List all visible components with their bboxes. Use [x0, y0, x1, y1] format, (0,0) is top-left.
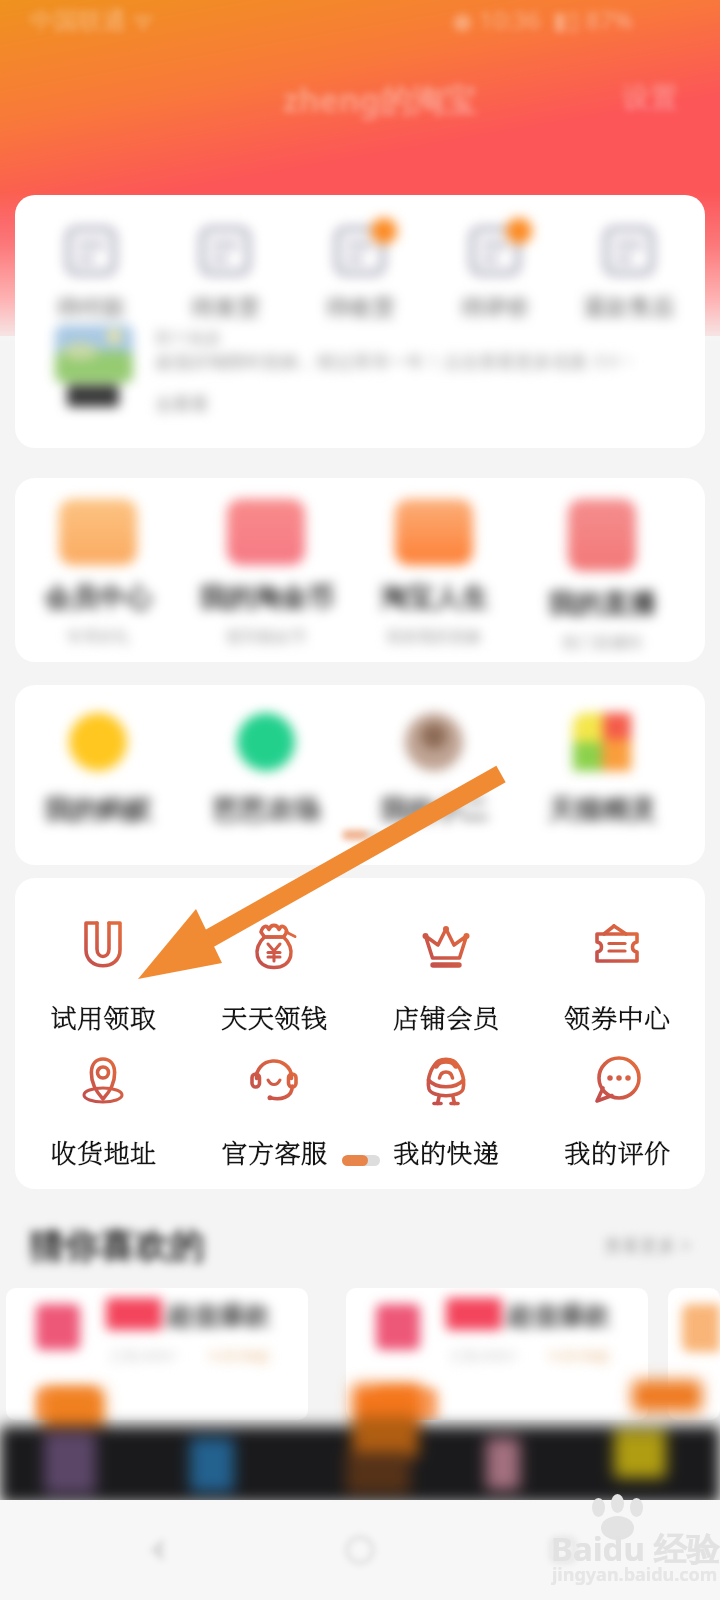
staticText: 专享好礼 — [66, 627, 130, 647]
staticText: 芭芭农场 — [212, 793, 320, 827]
button[interactable]: 待发货 — [166, 195, 284, 319]
button[interactable]: 淘宝人生 — [359, 499, 509, 647]
button[interactable]: 待收货 — [301, 195, 419, 319]
button[interactable]: 待付款 — [32, 195, 150, 319]
button[interactable]: 我的小二 — [359, 713, 509, 827]
staticText: ◉ 10:36 ▮▯ 87% — [452, 3, 634, 36]
staticText: 我的小二 — [380, 793, 488, 827]
button[interactable]: Recents — [517, 1504, 609, 1596]
staticText: 待评价 — [461, 293, 530, 319]
staticText: 我的淘金币 — [199, 581, 334, 615]
staticText: 官方客服 — [221, 1133, 328, 1170]
staticText: 我的直播 — [548, 587, 656, 621]
staticText: 查看更多 > — [604, 1233, 691, 1258]
staticText: 热门直播间 — [562, 633, 642, 653]
staticText: 会员中心 — [44, 581, 152, 615]
staticText: 双11热卖 — [155, 327, 222, 349]
staticText: ￥29.90起 — [546, 1346, 610, 1365]
staticText: 待收货 — [326, 293, 395, 319]
staticText: jingyan.baidu.com — [552, 1562, 718, 1587]
button[interactable]: 我的快递 — [362, 1055, 530, 1170]
button[interactable]: 芭芭农场 — [191, 713, 341, 827]
staticText: 店铺会员 — [393, 998, 500, 1035]
staticText: 收货地址 — [50, 1133, 157, 1170]
staticText: 待付款 — [57, 293, 126, 319]
staticText: ￥29.90起 — [206, 1346, 270, 1365]
staticText: 待发货 — [191, 293, 260, 319]
staticText: 超值好物限时抢购，错过再等一年！点击查看更多优惠 — [155, 351, 587, 374]
button[interactable]: 我的直播 — [527, 499, 677, 653]
staticText: 试用领取 — [50, 998, 157, 1035]
button[interactable]: 会员中心 — [23, 499, 173, 647]
staticText: 超值爆款 — [166, 1300, 270, 1333]
button[interactable]: 超值爆款 — [346, 1288, 648, 1420]
button[interactable]: 超值爆款 — [6, 1288, 308, 1420]
button[interactable]: 我的蚂蚁 — [23, 713, 173, 827]
staticText: 猜你喜欢的 — [29, 1224, 204, 1268]
staticText: 中国联通 ᯤ — [30, 3, 155, 36]
staticText: 天天领钱 — [221, 998, 328, 1035]
button[interactable]: 我的评价 — [533, 1055, 701, 1170]
staticText: zheng的淘宝 — [283, 78, 476, 122]
staticText: 超值爆款 — [506, 1300, 610, 1333]
button[interactable]: 待评价 — [436, 195, 554, 319]
staticText: 签到领金币 — [226, 627, 306, 647]
button[interactable]: 收货地址 — [19, 1055, 187, 1170]
button[interactable]: 天猫精灵 — [527, 713, 677, 827]
button[interactable]: 试用领取 — [19, 920, 187, 1035]
staticText: 退款售后 — [583, 293, 675, 319]
staticText: 我的评价 — [564, 1133, 671, 1170]
button[interactable]: 店铺会员 — [362, 920, 530, 1035]
button[interactable]: 领券中心 — [533, 920, 701, 1035]
staticText: 去看看 — [155, 393, 209, 416]
button[interactable]: 官方客服 — [190, 1055, 358, 1170]
button[interactable]: 我的淘金币 — [191, 499, 341, 647]
staticText: 淘宝人生 — [380, 581, 488, 615]
staticText: Baidu 经验 — [551, 1526, 720, 1571]
staticText: 我的快递 — [393, 1133, 500, 1170]
staticText: 我的蚂蚁 — [44, 793, 152, 827]
staticText: 领券中心 — [564, 998, 671, 1035]
staticText: 装扮我的形象 — [386, 627, 482, 647]
button[interactable]: 退款售后 — [570, 195, 688, 319]
button[interactable]: 天天领钱 — [190, 920, 358, 1035]
staticText: 设置 — [622, 80, 678, 115]
staticText: 天猫精灵 — [548, 793, 656, 827]
staticText: 更多 > — [593, 351, 633, 370]
